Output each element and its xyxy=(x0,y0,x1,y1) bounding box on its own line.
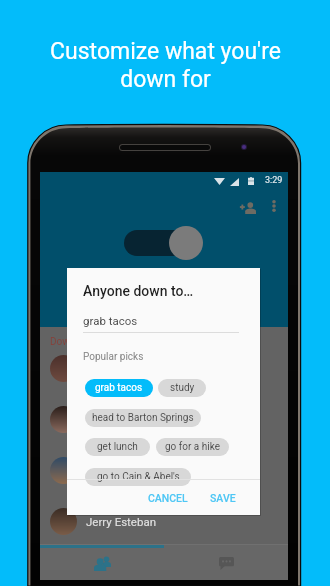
button[interactable]: CANCEL xyxy=(143,486,193,510)
button[interactable]: Chat xyxy=(164,544,288,580)
button[interactable]: Add person xyxy=(234,194,262,222)
staticText: grab tacos xyxy=(83,314,138,327)
staticText: get lunch xyxy=(97,441,138,453)
staticText: Anyone down to… xyxy=(83,283,194,299)
button[interactable]: Amy Torres xyxy=(40,404,288,434)
button[interactable]: Kyle Chan xyxy=(40,455,288,485)
button[interactable]: Jerry Esteban xyxy=(40,506,288,536)
staticText: SAVE xyxy=(210,492,236,504)
button[interactable]: go to Cain & Abel's xyxy=(85,468,191,486)
staticText: Jerry Esteban xyxy=(86,515,157,528)
staticText: Down for xyxy=(50,336,91,348)
button[interactable]: Sara Lewis xyxy=(40,353,288,383)
button[interactable]: go for a hike xyxy=(156,438,229,456)
button[interactable]: SAVE xyxy=(206,486,239,510)
button[interactable]: head to Barton Springs xyxy=(85,409,201,427)
button[interactable]: get lunch xyxy=(85,438,150,456)
staticText: Amy Torres xyxy=(86,413,145,426)
staticText: go to Cain & Abel's xyxy=(97,471,180,483)
button[interactable]: Availability toggle xyxy=(124,226,202,260)
staticText: head to Barton Springs xyxy=(92,412,194,424)
button[interactable]: More options xyxy=(262,194,286,218)
staticText: go for a hike xyxy=(165,441,220,453)
staticText: grab tacos xyxy=(95,382,143,394)
staticText: Kyle Chan xyxy=(86,464,137,477)
staticText: 3:29 xyxy=(265,175,283,186)
button[interactable]: grab tacos xyxy=(85,379,153,397)
staticText: CANCEL xyxy=(148,492,188,504)
staticText: Customize what you're down for xyxy=(50,38,281,92)
button[interactable]: People xyxy=(40,544,164,580)
staticText: Popular picks xyxy=(83,351,144,363)
button[interactable]: study xyxy=(158,379,206,397)
staticText: study xyxy=(170,382,195,394)
